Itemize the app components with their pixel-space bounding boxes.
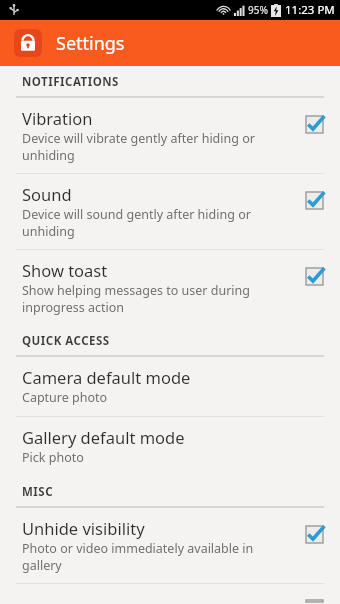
staticText: Unhide visibility — [22, 517, 145, 539]
button[interactable]: Show toast — [0, 250, 340, 325]
other: Checked — [305, 191, 324, 210]
staticText: Camera default mode — [22, 366, 191, 388]
staticText: 11:23 PM — [285, 2, 335, 18]
button[interactable]: Vibration — [0, 98, 340, 173]
staticText: Pick photo — [22, 449, 84, 466]
staticText: MISC — [22, 484, 54, 500]
staticText: Settings — [56, 31, 125, 56]
staticText: Sound — [22, 183, 72, 205]
staticText: NOTIFICATIONS — [22, 74, 119, 90]
staticText: 95% — [248, 3, 268, 17]
other: Checked — [305, 525, 324, 544]
button[interactable]: Unhide visibility — [0, 508, 340, 583]
staticText: QUICK ACCESS — [22, 333, 110, 349]
button[interactable]: Camera default mode — [0, 357, 340, 416]
staticText: Show helping messages to user during inp… — [22, 282, 295, 315]
button[interactable]: Gallery default mode — [0, 417, 340, 476]
staticText: Device will sound gently after hiding or… — [22, 206, 295, 239]
staticText: Device will vibrate gently after hiding … — [22, 130, 295, 163]
button[interactable]: Capture problem — [0, 584, 340, 604]
other: Checked — [305, 115, 324, 134]
other: Checked — [305, 267, 324, 286]
button[interactable]: Settings — [0, 20, 340, 66]
staticText: Capture photo — [22, 389, 108, 406]
button[interactable]: Sound — [0, 174, 340, 249]
staticText: Gallery default mode — [22, 426, 185, 448]
staticText: Vibration — [22, 107, 93, 129]
staticText: Show toast — [22, 259, 108, 281]
staticText: Photo or video immediately available in … — [22, 540, 295, 573]
